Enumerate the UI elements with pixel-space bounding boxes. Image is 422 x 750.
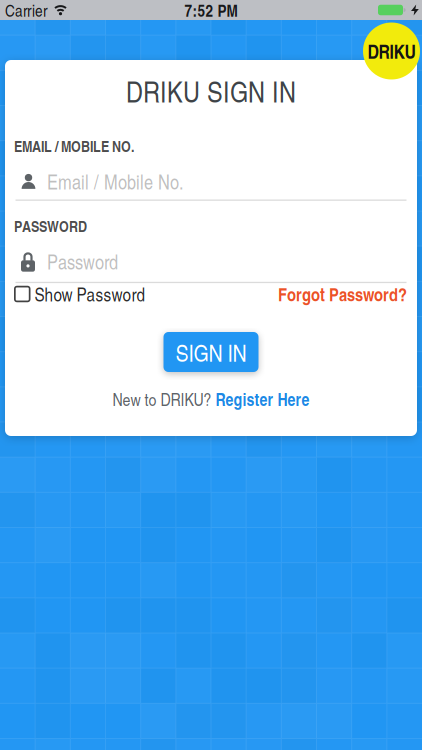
staticText: EMAIL / MOBILE NO. (14, 135, 134, 157)
staticText: SIGN IN (175, 335, 246, 368)
staticText: PASSWORD (14, 215, 87, 237)
staticText: Show Password (34, 281, 145, 307)
staticText: Forgot Password? (278, 281, 407, 307)
staticText: DRIKU (367, 37, 415, 65)
button[interactable]: New to DRIKU? (112, 387, 309, 411)
button[interactable]: Forgot Password? (278, 281, 407, 307)
button[interactable]: SIGN IN (163, 332, 258, 372)
staticText: Carrier (5, 0, 48, 21)
staticText: DRIKU SIGN IN (126, 71, 296, 111)
staticText: Email / Mobile No. (47, 168, 184, 195)
staticText: Password (47, 248, 118, 275)
button[interactable]: Show Password (14, 281, 145, 307)
staticText: New to DRIKU? (112, 387, 211, 411)
staticText: 7:52 PM (184, 0, 237, 22)
staticText: Register Here (215, 387, 309, 411)
